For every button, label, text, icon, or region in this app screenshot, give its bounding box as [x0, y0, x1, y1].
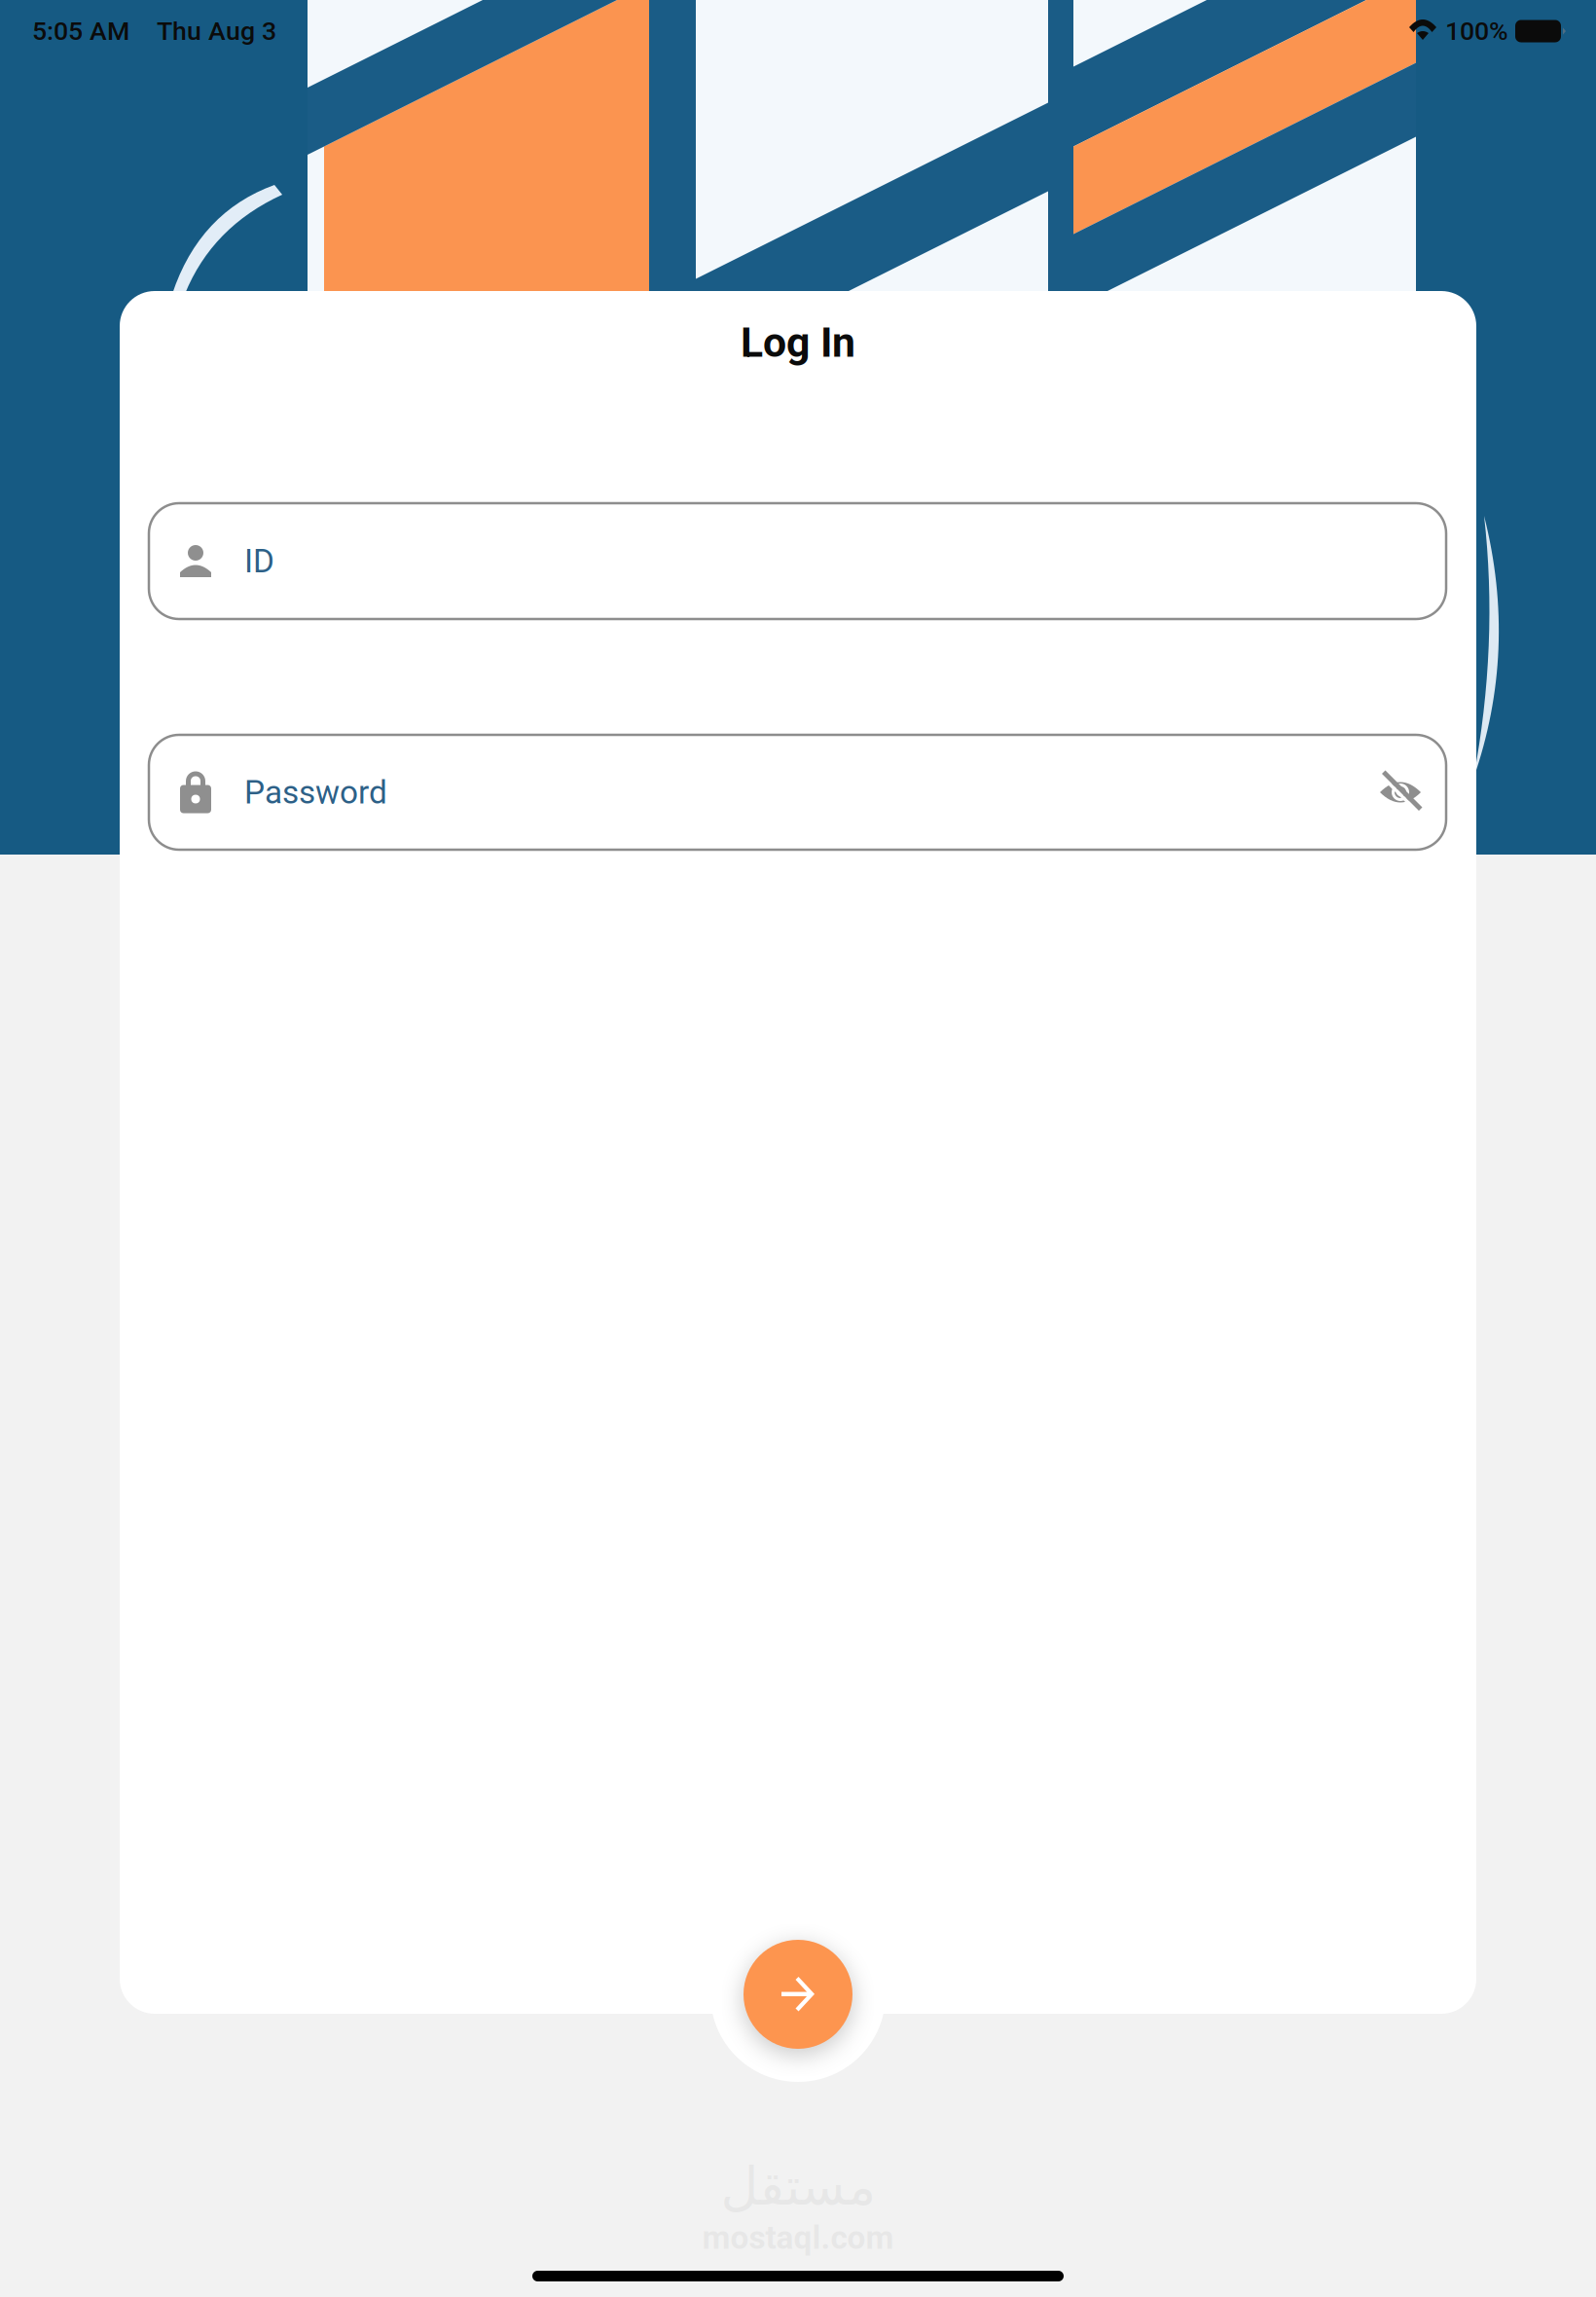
staticText: 100%	[1445, 16, 1508, 46]
staticText: ID	[244, 542, 274, 580]
staticText: مستقل	[720, 2156, 876, 2217]
staticText: mostaql.com	[702, 2219, 894, 2257]
staticText: 5:05 AM	[32, 16, 129, 46]
button[interactable]: ID	[149, 503, 1446, 619]
button[interactable]: Continue	[744, 1940, 852, 2049]
staticText: Password	[244, 773, 387, 811]
button[interactable]: Password	[149, 735, 1446, 850]
staticText: Log In	[741, 318, 855, 367]
staticText: Thu Aug 3	[157, 16, 276, 46]
